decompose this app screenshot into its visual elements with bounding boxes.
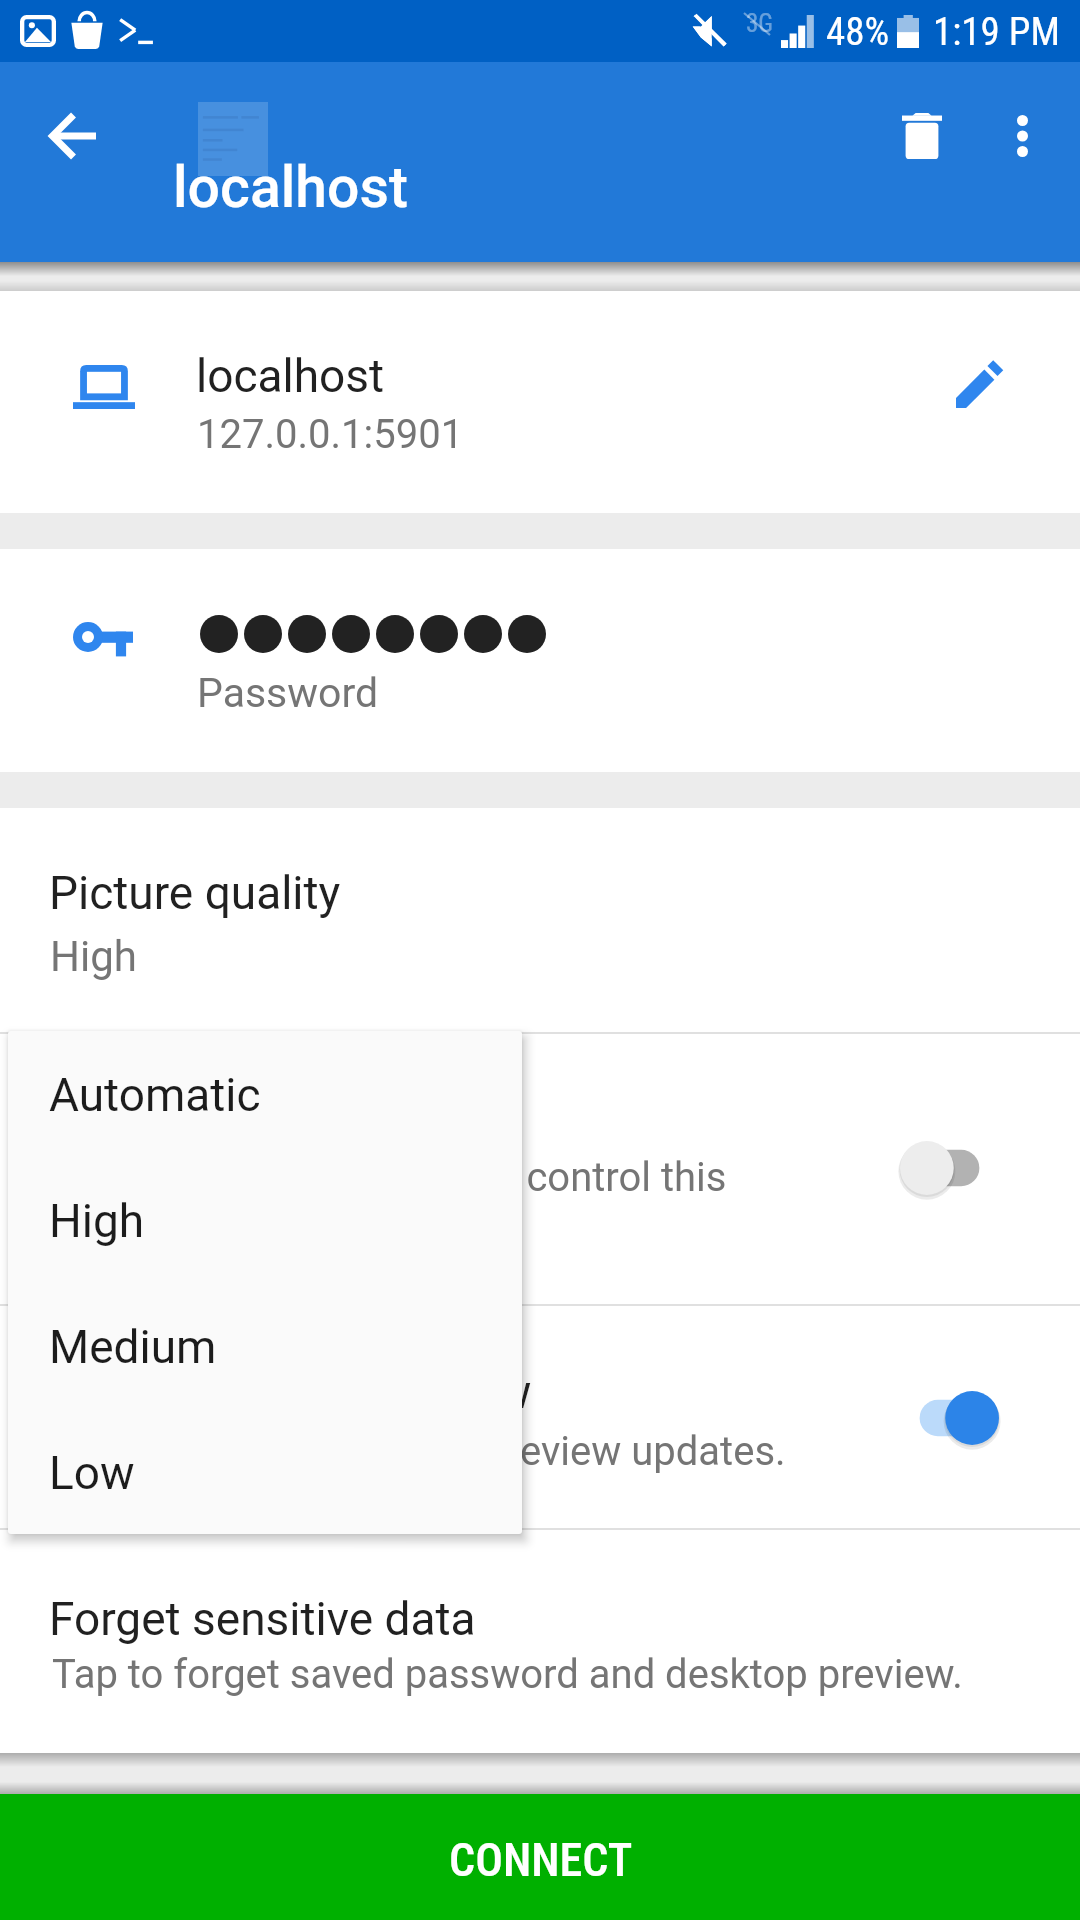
button[interactable]: Navigate up (19, 81, 129, 191)
button[interactable]: Remote control (0, 1034, 1080, 1304)
button[interactable]: Edit (925, 329, 1035, 439)
staticText: 48% (826, 9, 890, 55)
staticText: CONNECT (449, 1833, 633, 1887)
staticText: Tap to allow (49, 1096, 265, 1143)
button[interactable]: More options (967, 81, 1077, 191)
staticText: High (49, 1194, 145, 1248)
button[interactable]: Forget sensitive data (0, 1530, 1080, 1753)
staticText: Remote control (49, 1034, 363, 1088)
staticText: Password (197, 669, 379, 717)
staticText: 1:19 PM (933, 9, 1060, 55)
button[interactable]: Automatic (8, 1031, 522, 1157)
staticText: High (50, 932, 137, 981)
button[interactable]: Off (900, 1140, 984, 1196)
button[interactable]: On (915, 1390, 999, 1446)
staticText: localhost (196, 349, 385, 403)
button[interactable]: Low (8, 1409, 522, 1534)
staticText: enable and allow others to control this (49, 1154, 727, 1201)
button[interactable]: CONNECT (0, 1794, 1080, 1920)
staticText: Forget sensitive data (49, 1592, 476, 1646)
staticText: 127.0.0.1:5901 (197, 411, 464, 458)
button[interactable]: localhost (0, 291, 1080, 513)
button[interactable]: Delete (867, 81, 977, 191)
staticText: Enable desktop preview (49, 1365, 532, 1419)
staticText: Medium (49, 1320, 217, 1374)
button[interactable]: High (8, 1157, 522, 1283)
staticText: Tap to forget saved password and desktop… (52, 1651, 963, 1698)
staticText: Automatic (49, 1068, 261, 1122)
button[interactable]: Enable desktop preview (0, 1306, 1080, 1528)
staticText: 3G (746, 9, 774, 38)
staticText: Enable periodic desktop preview updates. (49, 1428, 786, 1475)
staticText: Picture quality (49, 866, 341, 920)
button[interactable]: Medium (8, 1283, 522, 1409)
staticText: Low (49, 1446, 135, 1500)
button[interactable]: Picture quality (0, 808, 1080, 1032)
staticText: localhost (173, 154, 408, 221)
button[interactable]: Password (0, 549, 1080, 772)
